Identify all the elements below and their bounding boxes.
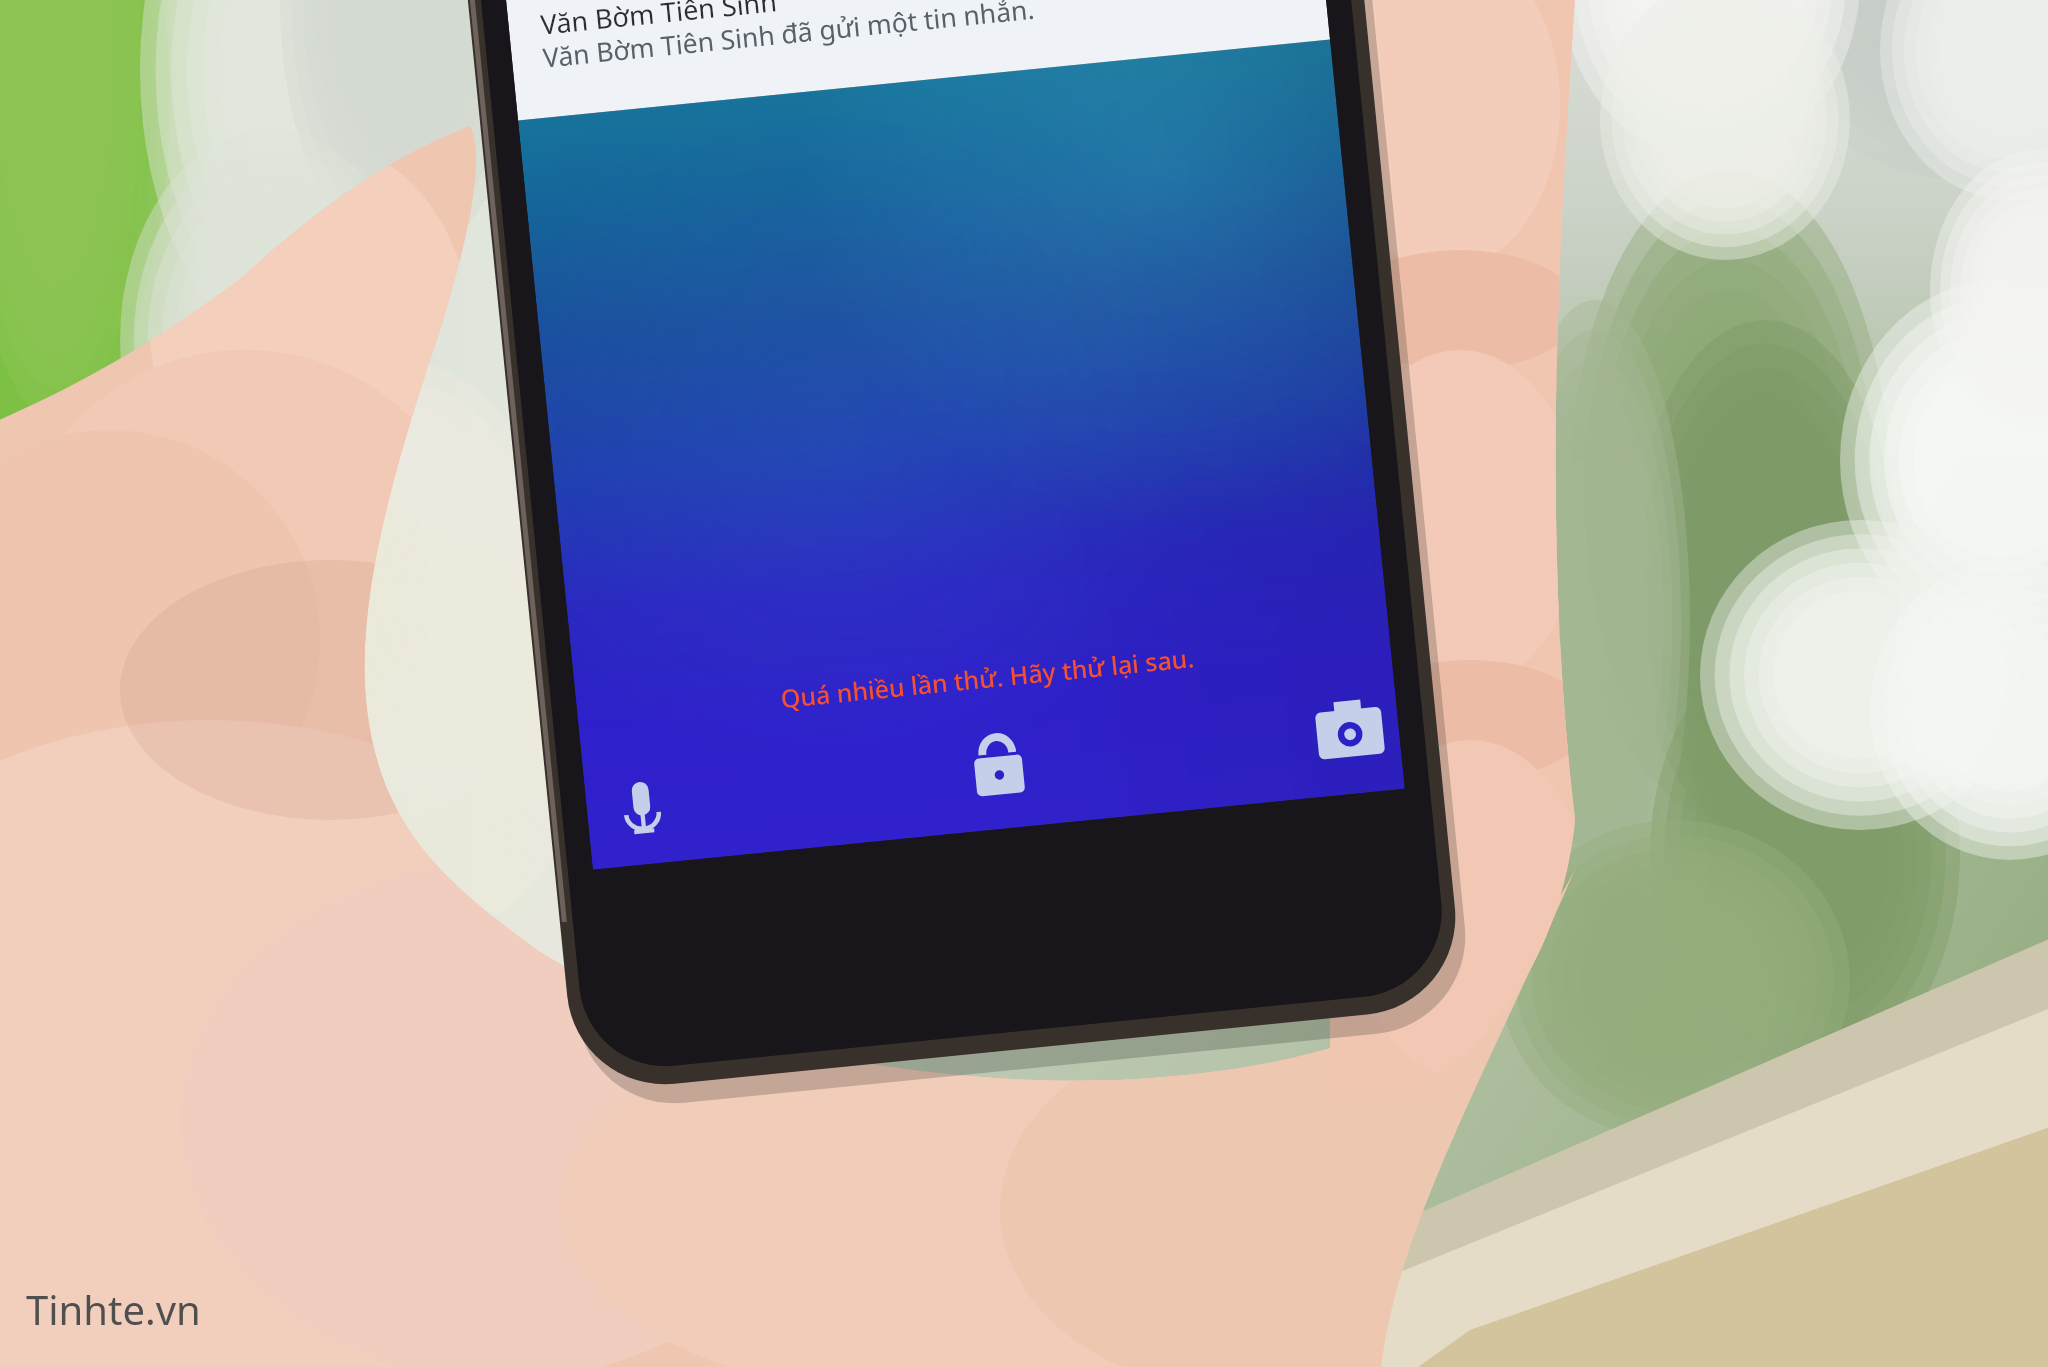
button[interactable]: Open camera — [1261, 682, 1410, 814]
button[interactable]: Notification from Văn Bờm Tiên Sinh — [0, 0, 2048, 1367]
button[interactable]: Voice assist — [550, 754, 689, 886]
button[interactable]: Notification from Văn Bờm Tiên Sinh — [512, 0, 1341, 123]
button[interactable]: Unlock — [913, 719, 1052, 851]
